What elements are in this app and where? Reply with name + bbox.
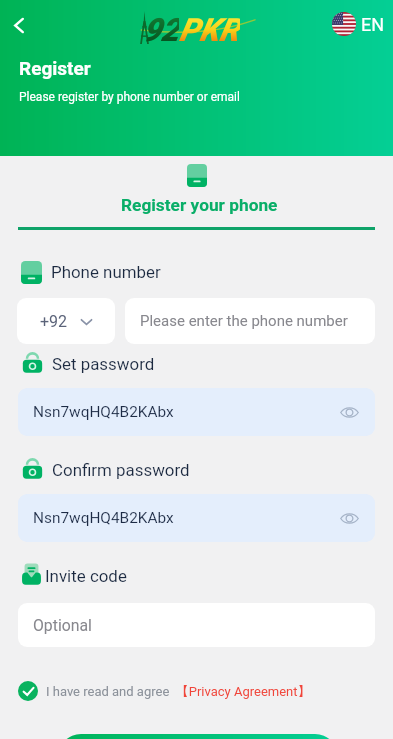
staticText: +92	[40, 312, 68, 331]
staticText: 92	[143, 11, 179, 45]
button[interactable]: Show password	[335, 504, 363, 532]
staticText: Nsn7wqHQ4B2KAbx	[33, 509, 174, 527]
button[interactable]: EN	[332, 12, 385, 36]
staticText: Phone number	[51, 262, 161, 282]
button[interactable]: Show password	[335, 398, 363, 426]
button[interactable]: Please enter the phone number	[125, 298, 375, 344]
staticText: Please register by phone number or email	[19, 90, 240, 104]
button[interactable]: +92	[17, 298, 115, 344]
staticText: Nsn7wqHQ4B2KAbx	[33, 403, 174, 421]
button[interactable]: Back	[3, 9, 35, 41]
staticText: Register	[19, 57, 91, 79]
staticText: Please enter the phone number	[140, 312, 348, 330]
staticText: Invite code	[45, 566, 127, 586]
staticText: Set password	[52, 354, 155, 374]
button[interactable]: I agree checkbox	[18, 681, 38, 701]
button[interactable]: Register	[58, 734, 338, 739]
staticText: Confirm password	[52, 460, 190, 480]
staticText: Register your phone	[121, 195, 278, 215]
staticText: Optional	[33, 616, 92, 635]
staticText: PKR	[179, 11, 240, 45]
button[interactable]: Optional	[18, 603, 375, 647]
button[interactable]: Nsn7wqHQ4B2KAbx	[18, 494, 375, 542]
staticText: EN	[361, 14, 385, 35]
button[interactable]: Nsn7wqHQ4B2KAbx	[18, 388, 375, 436]
button[interactable]: I have read and agree 【Privacy Agreement…	[46, 683, 311, 699]
